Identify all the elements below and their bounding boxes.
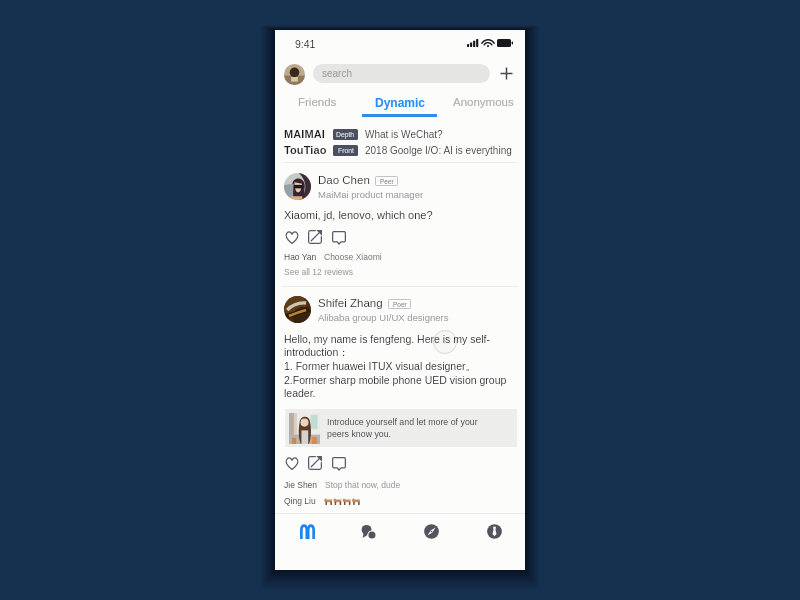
button[interactable]: Home bbox=[286, 514, 328, 570]
button[interactable]: TouTiao bbox=[284, 144, 522, 156]
button[interactable]: Add post bbox=[497, 64, 516, 83]
staticText: Shifei Zhang bbox=[318, 297, 383, 310]
staticText: 2018 Goolge I/O: AI is everything bbox=[365, 145, 512, 156]
staticText: Peer bbox=[380, 178, 394, 185]
button[interactable]: Messages bbox=[347, 514, 389, 570]
button[interactable]: Share bbox=[305, 227, 325, 247]
staticText: See all 12 reviews bbox=[284, 267, 353, 276]
staticText: Alibaba group UI/UX designers bbox=[318, 312, 449, 323]
button[interactable]: Introduce yourself and let more of your … bbox=[285, 409, 517, 447]
staticText: Front bbox=[338, 147, 354, 155]
staticText: MaiMai product manager bbox=[318, 189, 424, 200]
button[interactable]: Comment bbox=[329, 453, 349, 473]
staticText: Xiaomi, jd, lenovo, which one? bbox=[284, 209, 433, 221]
staticText: Introduce yourself and let more of your … bbox=[327, 417, 478, 439]
button[interactable]: Share bbox=[305, 453, 325, 473]
staticText: Anonymous bbox=[453, 96, 514, 109]
staticText: MAIMAI bbox=[284, 128, 325, 140]
button[interactable]: Avatar bbox=[284, 296, 311, 323]
staticText: 9:41 bbox=[295, 38, 316, 50]
staticText: Poer bbox=[393, 301, 407, 308]
staticText: Stop that now, dude bbox=[325, 480, 401, 489]
staticText: Choose Xiaomi bbox=[324, 252, 382, 261]
staticText: Hello, my name is fengfeng. Here is my s… bbox=[284, 333, 507, 399]
staticText: Hao Yan bbox=[284, 252, 317, 261]
button[interactable]: Discover bbox=[410, 514, 452, 570]
staticText: Depth bbox=[336, 131, 355, 139]
staticText: Jie Shen bbox=[284, 480, 318, 489]
staticText: What is WeChat? bbox=[365, 129, 443, 140]
button[interactable]: Like bbox=[282, 227, 302, 247]
staticText: Friends bbox=[298, 96, 337, 109]
staticText: Qing Liu bbox=[284, 496, 316, 505]
staticText: search bbox=[322, 68, 353, 79]
button[interactable]: Me bbox=[473, 514, 515, 570]
button[interactable]: search bbox=[313, 64, 490, 83]
staticText: TouTiao bbox=[284, 144, 327, 156]
button[interactable]: MAIMAI bbox=[284, 128, 522, 140]
button[interactable]: Like bbox=[282, 453, 302, 473]
button[interactable]: Friends bbox=[275, 92, 359, 112]
button[interactable]: Avatar bbox=[284, 173, 311, 200]
button[interactable]: Anonymous bbox=[442, 92, 525, 112]
button[interactable]: Profile bbox=[284, 64, 305, 85]
staticText: Dynamic bbox=[375, 96, 426, 109]
staticText: Dao Chen bbox=[318, 174, 370, 187]
button[interactable]: Comment bbox=[329, 227, 349, 247]
button[interactable]: Dynamic bbox=[359, 92, 442, 112]
